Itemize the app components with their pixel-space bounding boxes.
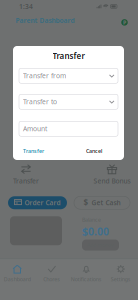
button[interactable]: $ (74, 196, 130, 209)
button[interactable]: Profile (119, 17, 130, 28)
staticText: Notifications (71, 276, 102, 283)
staticText: Order Card (24, 198, 60, 207)
button[interactable]: Dashboard (0, 260, 34, 283)
staticText: Parent Dashboard (15, 16, 74, 25)
staticText: Chores (43, 276, 60, 283)
button[interactable]: Amount (19, 121, 118, 136)
button[interactable]: Chores (34, 260, 69, 283)
button[interactable]: Add money (82, 239, 119, 251)
staticText: 1:34 (19, 2, 33, 11)
button[interactable]: Cancel (82, 144, 106, 157)
staticText: Transfer to (23, 97, 57, 106)
button[interactable]: Transfer to (19, 94, 118, 109)
staticText: Transfer (52, 51, 84, 61)
staticText: Transfer (13, 176, 39, 185)
staticText: $0.00 (82, 224, 109, 238)
staticText: Balance (82, 216, 101, 223)
staticText: $ (83, 197, 88, 208)
button[interactable]: Settings (103, 260, 138, 283)
button[interactable]: Send Bonus (90, 161, 134, 187)
staticText: Transfer (23, 147, 44, 154)
staticText: Cancel (86, 147, 102, 154)
staticText: Get Cash (91, 198, 120, 207)
staticText: Dashboard (4, 276, 31, 283)
button[interactable]: Notifications (69, 260, 103, 283)
staticText: Amount (23, 124, 47, 133)
staticText: Send Bonus (93, 176, 130, 185)
button[interactable]: Order Card (8, 196, 67, 209)
button[interactable]: Transfer (4, 161, 48, 187)
staticText: Transfer from (23, 71, 66, 80)
button[interactable]: Transfer (19, 144, 48, 157)
button[interactable]: Transfer from (19, 68, 118, 83)
staticText: Settings (111, 276, 131, 283)
staticText: P (123, 19, 126, 26)
